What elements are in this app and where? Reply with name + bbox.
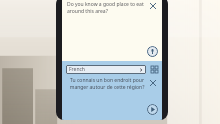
staticText: French — [69, 66, 85, 73]
button[interactable]: Play translation — [147, 104, 158, 115]
button[interactable]: Clear text — [148, 1, 158, 11]
button[interactable]: Tu connais un bon endroit pour manger au… — [68, 77, 146, 91]
button[interactable]: Speak — [147, 46, 158, 57]
button[interactable]: Fullscreen — [149, 64, 159, 74]
button[interactable]: French — [66, 65, 146, 74]
button[interactable]: Clear translation — [148, 78, 158, 88]
staticText: Do you know a good place to eat around t… — [67, 1, 146, 15]
button[interactable]: Do you know a good place to eat around t… — [67, 1, 146, 15]
staticText: Tu connais un bon endroit pour manger au… — [68, 77, 146, 91]
